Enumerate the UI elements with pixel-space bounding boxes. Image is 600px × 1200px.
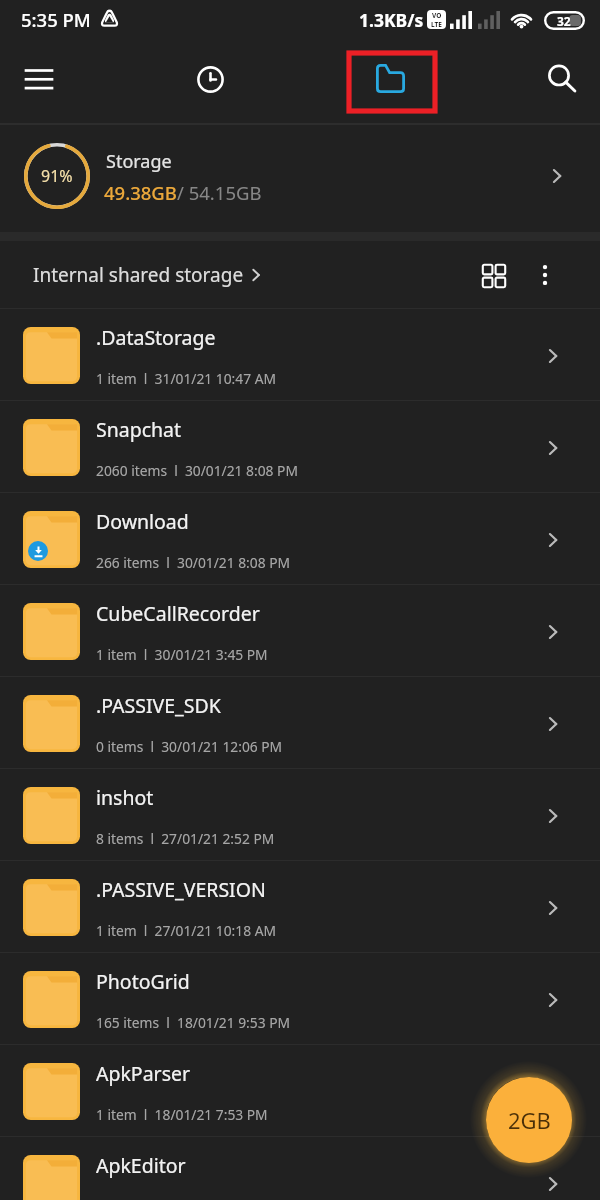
staticText: inshot [96, 784, 154, 811]
staticText: 0 items l 30/01/21 12:06 PM [96, 737, 283, 756]
staticText: 91% [41, 165, 73, 187]
button[interactable]: .PASSIVE_SDK [0, 677, 600, 768]
button[interactable]: 2GB [486, 1077, 572, 1163]
button[interactable]: Recent [186, 55, 234, 103]
button[interactable]: CubeCallRecorder [0, 585, 600, 676]
staticText: 49.38GB [104, 180, 177, 205]
staticText: .PASSIVE_SDK [96, 692, 221, 719]
staticText: 266 items l 30/01/21 8:08 PM [96, 553, 291, 572]
staticText: 1 item l 18/01/21 7:53 PM [96, 1105, 268, 1124]
button[interactable]: Download [0, 493, 600, 584]
staticText: 1 item l 27/01/21 10:18 AM [96, 921, 276, 940]
button[interactable]: Snapchat [0, 401, 600, 492]
staticText: ApkEditor [96, 1152, 186, 1179]
staticText: 32 [557, 13, 571, 29]
staticText: / 54.15GB [177, 180, 262, 205]
button[interactable]: Search [538, 55, 586, 103]
button[interactable]: .DataStorage [0, 309, 600, 400]
staticText: 1 item l 31/01/21 10:47 AM [96, 369, 276, 388]
staticText: .DataStorage [96, 324, 216, 351]
button[interactable]: 91% [0, 125, 600, 232]
staticText: Snapchat [96, 416, 182, 443]
staticText: 2060 items l 30/01/21 8:08 PM [96, 461, 298, 480]
staticText: 2GB [508, 1105, 551, 1135]
button[interactable]: More options [523, 253, 567, 297]
button[interactable]: PhotoGrid [0, 953, 600, 1044]
button[interactable]: Files [349, 53, 435, 111]
staticText: 5:35 PM [21, 7, 91, 32]
staticText: ApkParser [96, 1060, 191, 1087]
staticText: 165 items l 18/01/21 9:53 PM [96, 1013, 291, 1032]
staticText: 1 item l 30/01/21 3:45 PM [96, 645, 268, 664]
staticText: VO [432, 11, 442, 20]
staticText: Internal shared storage [33, 262, 244, 288]
staticText: 8 items l 27/01/21 2:52 PM [96, 829, 275, 848]
staticText: PhotoGrid [96, 968, 190, 995]
staticText: Download [96, 508, 189, 535]
staticText: CubeCallRecorder [96, 600, 260, 627]
button[interactable]: inshot [0, 769, 600, 860]
button[interactable]: Grid view [471, 253, 515, 297]
staticText: LTE [431, 20, 442, 29]
button[interactable]: Menu [15, 55, 63, 103]
button[interactable]: .PASSIVE_VERSION [0, 861, 600, 952]
button[interactable]: ApkEditor [0, 1137, 600, 1200]
staticText: 1.3KB/s [359, 8, 424, 32]
button[interactable]: ApkParser [0, 1045, 600, 1136]
button[interactable]: Internal shared storage [33, 262, 264, 288]
staticText: .PASSIVE_VERSION [96, 876, 266, 903]
staticText: Storage [106, 149, 172, 174]
